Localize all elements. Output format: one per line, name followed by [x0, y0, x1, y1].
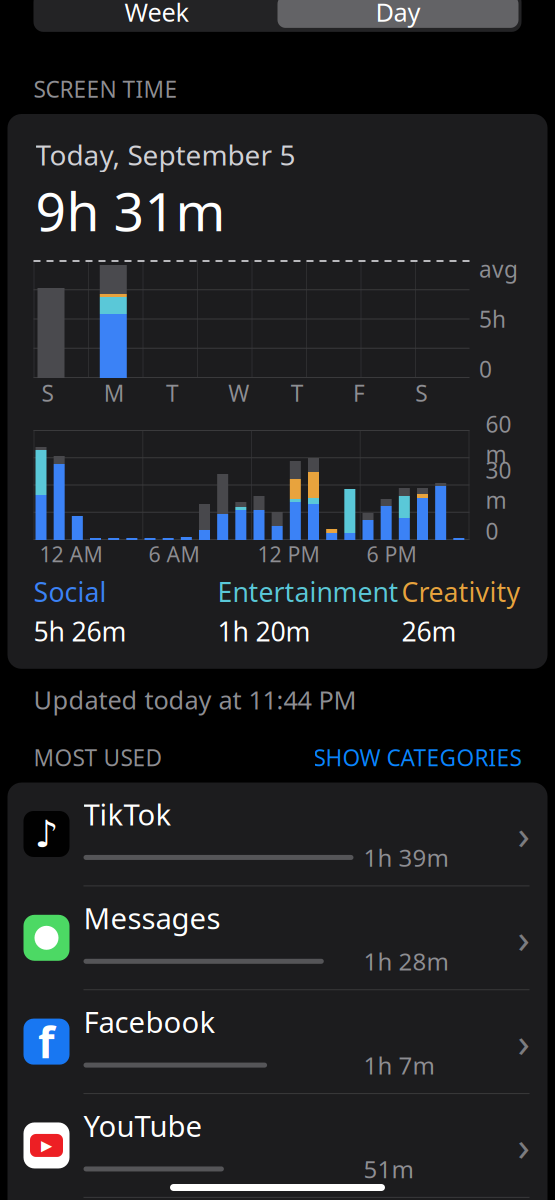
staticText: Creativity	[401, 574, 520, 609]
staticText: ›	[517, 807, 529, 860]
staticText: 0	[485, 516, 498, 546]
staticText: Day	[375, 0, 420, 29]
staticText: YouTube	[83, 1106, 202, 1145]
staticText: 26m	[401, 613, 456, 649]
staticText: T	[291, 378, 304, 408]
staticText: 5h	[479, 304, 506, 334]
staticText: ›	[517, 1119, 529, 1172]
staticText: Facebook	[83, 1002, 215, 1041]
staticText: Updated today at 11:44 PM	[33, 683, 356, 716]
staticText: 1h 39m	[363, 841, 448, 873]
staticText: W	[228, 378, 249, 408]
staticText: 1h 28m	[363, 945, 448, 977]
staticText: MOST USED	[33, 742, 162, 773]
button[interactable]: ♪	[7, 783, 547, 886]
staticText: M	[104, 378, 125, 408]
staticText: 12 PM	[257, 540, 319, 568]
staticText: 30m	[485, 455, 511, 515]
staticText: 6 PM	[366, 540, 416, 568]
staticText: 0	[479, 354, 492, 384]
staticText: ›	[517, 911, 529, 964]
staticText: Today, September 5	[35, 136, 295, 173]
button[interactable]: f	[7, 990, 547, 1094]
staticText: 1h 7m	[363, 1049, 434, 1081]
staticText: Entertainment	[217, 574, 398, 609]
staticText: 5h 26m	[33, 613, 126, 649]
staticText: 1h 20m	[217, 613, 310, 649]
staticText: ♪	[34, 813, 58, 855]
staticText: S	[41, 378, 53, 408]
staticText: F	[353, 378, 365, 408]
staticText: 6 AM	[148, 540, 199, 568]
staticText: ▶	[41, 1137, 52, 1154]
button[interactable]: Messages	[7, 886, 547, 990]
staticText: T	[166, 378, 179, 408]
staticText: SCREEN TIME	[33, 74, 177, 104]
staticText: 60m	[485, 409, 511, 469]
staticText: 9h 31m	[35, 175, 225, 246]
staticText: ›	[517, 1015, 529, 1068]
staticText: f	[38, 1013, 55, 1070]
button[interactable]: ▶	[7, 1094, 547, 1198]
staticText: 12 AM	[39, 540, 102, 568]
staticText: Messages	[83, 898, 220, 937]
button[interactable]: Day	[277, 0, 518, 28]
staticText: Week	[124, 0, 189, 29]
button[interactable]: SHOW CATEGORIES	[313, 742, 521, 773]
staticText: TikTok	[83, 795, 171, 834]
staticText: Social	[33, 574, 106, 609]
staticText: 51m	[363, 1153, 413, 1185]
staticText: SHOW CATEGORIES	[313, 742, 521, 773]
staticText: S	[415, 378, 427, 408]
button[interactable]: Week	[36, 0, 277, 28]
staticText: avg	[479, 254, 518, 284]
